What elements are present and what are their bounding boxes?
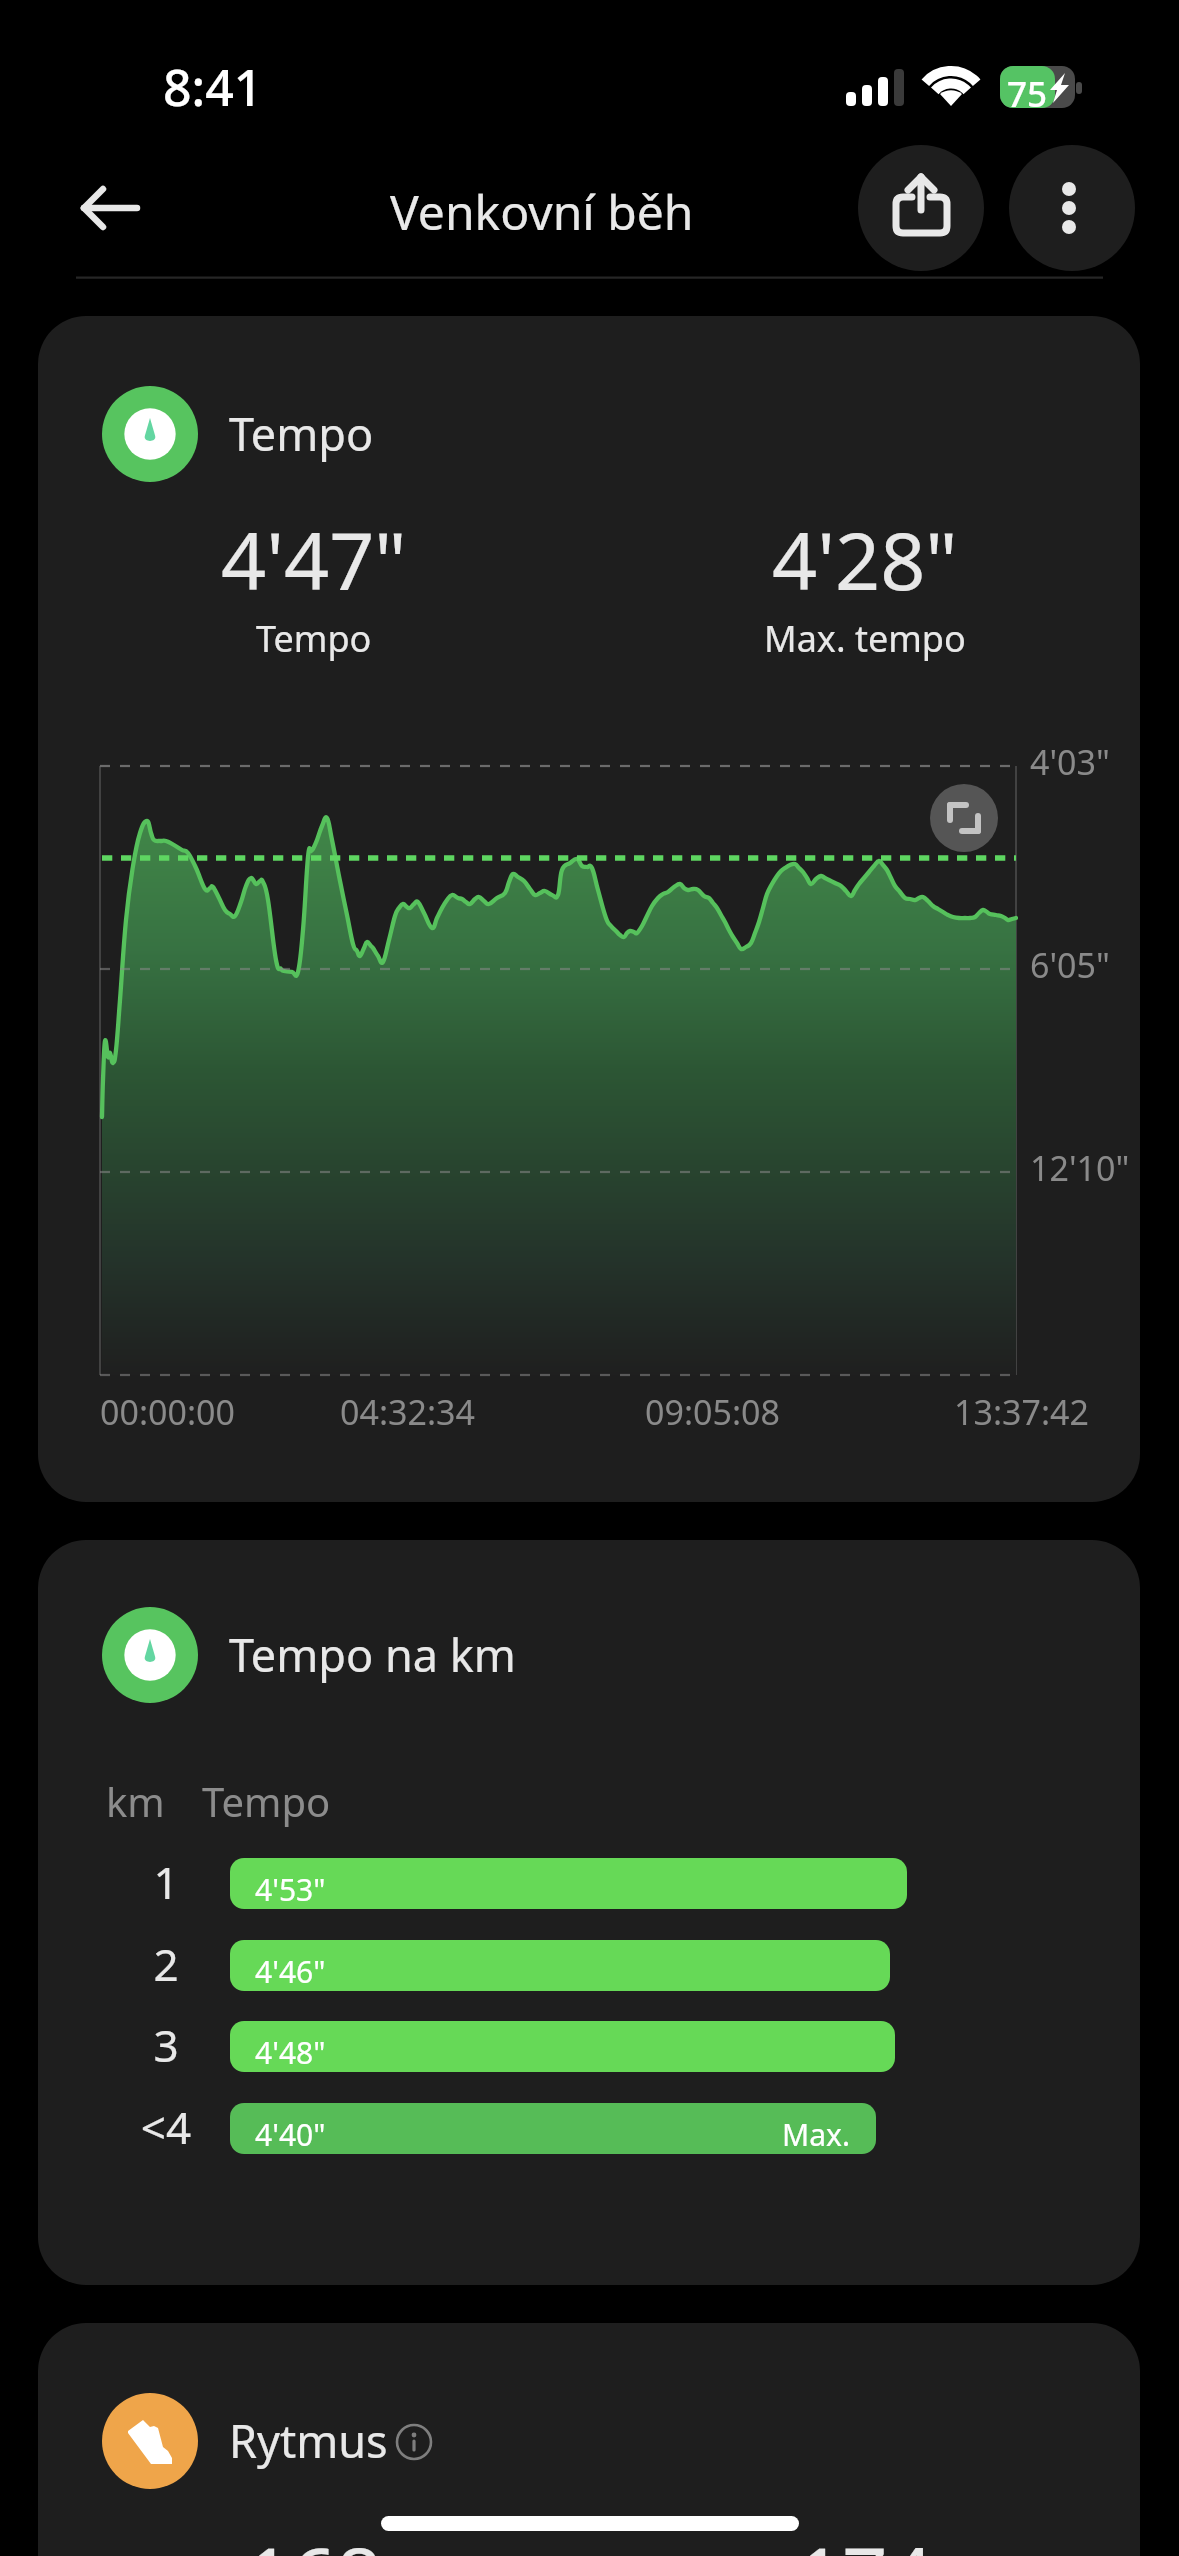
staticText: 2 (38, 1934, 294, 1994)
staticText: 174 (797, 2521, 933, 2556)
staticText: 6'05" (1030, 942, 1110, 988)
staticText: 4'03" (1030, 739, 1110, 785)
button[interactable]: Tempo na km (38, 1540, 1140, 2285)
button[interactable]: Rytmus (38, 2323, 1140, 2556)
staticText: 4'28" (772, 506, 958, 614)
staticText: 4'47" (221, 506, 407, 614)
staticText: 8:41 (163, 53, 263, 121)
button[interactable]: Expand chart (930, 784, 998, 852)
staticText: Tempo (229, 403, 374, 464)
staticText: 13:37:42 (954, 1389, 1089, 1435)
staticText: Venkovní běh (390, 179, 694, 244)
staticText: 09:05:08 (645, 1389, 780, 1435)
staticText: 12'10" (1030, 1145, 1130, 1191)
button[interactable]: Share (858, 145, 984, 271)
staticText: Tempo (202, 1774, 331, 1828)
staticText: 4'46" (255, 1951, 326, 1991)
staticText: 4'53" (255, 1869, 326, 1909)
staticText: Tempo na km (229, 1624, 516, 1685)
button[interactable]: More options (1009, 145, 1135, 271)
staticText: Max. (230, 2114, 850, 2154)
staticText: 04:32:34 (340, 1389, 475, 1435)
staticText: <4 (38, 2097, 294, 2157)
staticText: Rytmus (229, 2410, 388, 2471)
staticText: 168 (246, 2521, 382, 2556)
staticText: Tempo (256, 614, 372, 663)
staticText: Max. tempo (764, 614, 966, 663)
staticText: 00:00:00 (100, 1389, 235, 1435)
staticText: 75 (1007, 70, 1048, 118)
staticText: 3 (38, 2015, 294, 2075)
staticText: 4'40" (255, 2114, 326, 2154)
button[interactable]: Back (62, 162, 154, 254)
button[interactable]: Tempo (38, 316, 1140, 1502)
staticText: 1 (38, 1852, 294, 1912)
staticText: km (106, 1774, 165, 1828)
staticText: 4'48" (255, 2032, 326, 2072)
